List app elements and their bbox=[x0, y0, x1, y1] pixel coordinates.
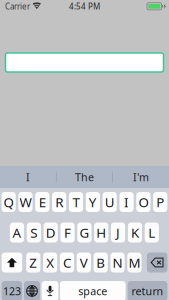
button[interactable]: U bbox=[103, 192, 117, 212]
staticText: I bbox=[26, 170, 30, 184]
button[interactable]: The bbox=[56, 166, 112, 188]
button[interactable]: I bbox=[119, 192, 134, 212]
staticText: space bbox=[78, 284, 107, 298]
button[interactable]: A bbox=[10, 222, 24, 242]
button[interactable]: H bbox=[94, 222, 108, 242]
staticText: C bbox=[63, 254, 71, 271]
staticText: L bbox=[148, 224, 155, 241]
staticText: 4:54 PM bbox=[69, 1, 100, 12]
button[interactable]: space bbox=[60, 281, 126, 300]
staticText: return bbox=[131, 284, 163, 298]
button[interactable]: J bbox=[111, 222, 125, 242]
staticText: S bbox=[30, 224, 37, 241]
staticText: I bbox=[124, 193, 129, 211]
button[interactable]: Y bbox=[86, 192, 100, 212]
staticText: The bbox=[75, 170, 94, 184]
button[interactable]: return bbox=[128, 281, 167, 300]
staticText: I'm bbox=[133, 170, 149, 184]
button[interactable]: T bbox=[69, 192, 83, 212]
button[interactable]: C bbox=[60, 252, 74, 272]
button[interactable]: W bbox=[18, 192, 33, 212]
button[interactable]: F bbox=[60, 222, 75, 242]
staticText: U bbox=[105, 193, 115, 211]
button[interactable]: K bbox=[128, 222, 142, 242]
button[interactable]: L bbox=[145, 222, 159, 242]
staticText: A bbox=[12, 224, 21, 241]
staticText: X bbox=[46, 254, 54, 271]
button[interactable]: M bbox=[127, 252, 141, 272]
staticText: N bbox=[112, 254, 122, 271]
button[interactable]: S bbox=[27, 222, 41, 242]
button[interactable]: N bbox=[110, 252, 125, 272]
button[interactable]: X bbox=[43, 252, 57, 272]
button[interactable]: Shift bbox=[2, 252, 22, 272]
button[interactable]: P bbox=[153, 192, 167, 212]
button[interactable]: Dictation bbox=[42, 281, 58, 300]
staticText: H bbox=[96, 224, 106, 241]
staticText: V bbox=[80, 254, 88, 271]
staticText: G bbox=[79, 224, 89, 241]
button[interactable]: Numbers bbox=[2, 281, 22, 300]
staticText: 123 bbox=[3, 284, 21, 298]
staticText: T bbox=[72, 193, 79, 211]
staticText: F bbox=[64, 224, 71, 241]
button[interactable]: B bbox=[94, 252, 108, 272]
button[interactable]: Next keyboard bbox=[24, 281, 40, 300]
staticText: P bbox=[156, 193, 164, 211]
button[interactable]: R bbox=[52, 192, 66, 212]
button[interactable]: D bbox=[44, 222, 58, 242]
button[interactable]: V bbox=[77, 252, 91, 272]
button[interactable]: G bbox=[77, 222, 91, 242]
button[interactable]: Q bbox=[1, 192, 16, 212]
staticText: M bbox=[128, 254, 140, 271]
button[interactable]: E bbox=[35, 192, 49, 212]
button[interactable]: Delete bbox=[147, 252, 167, 272]
button[interactable]: I'm bbox=[113, 166, 169, 188]
staticText: Carrier bbox=[5, 1, 30, 12]
staticText: Q bbox=[4, 193, 14, 211]
button[interactable]: O bbox=[136, 192, 150, 212]
staticText: E bbox=[39, 193, 46, 211]
staticText: Z bbox=[29, 254, 37, 271]
button[interactable]: Z bbox=[26, 252, 40, 272]
staticText: B bbox=[96, 254, 105, 271]
staticText: Y bbox=[89, 193, 97, 211]
staticText: J bbox=[116, 224, 120, 241]
staticText: W bbox=[19, 193, 31, 211]
staticText: D bbox=[46, 224, 56, 241]
staticText: R bbox=[55, 193, 63, 211]
button[interactable]: I bbox=[0, 166, 56, 188]
staticText: K bbox=[131, 224, 139, 241]
staticText: O bbox=[138, 193, 148, 211]
